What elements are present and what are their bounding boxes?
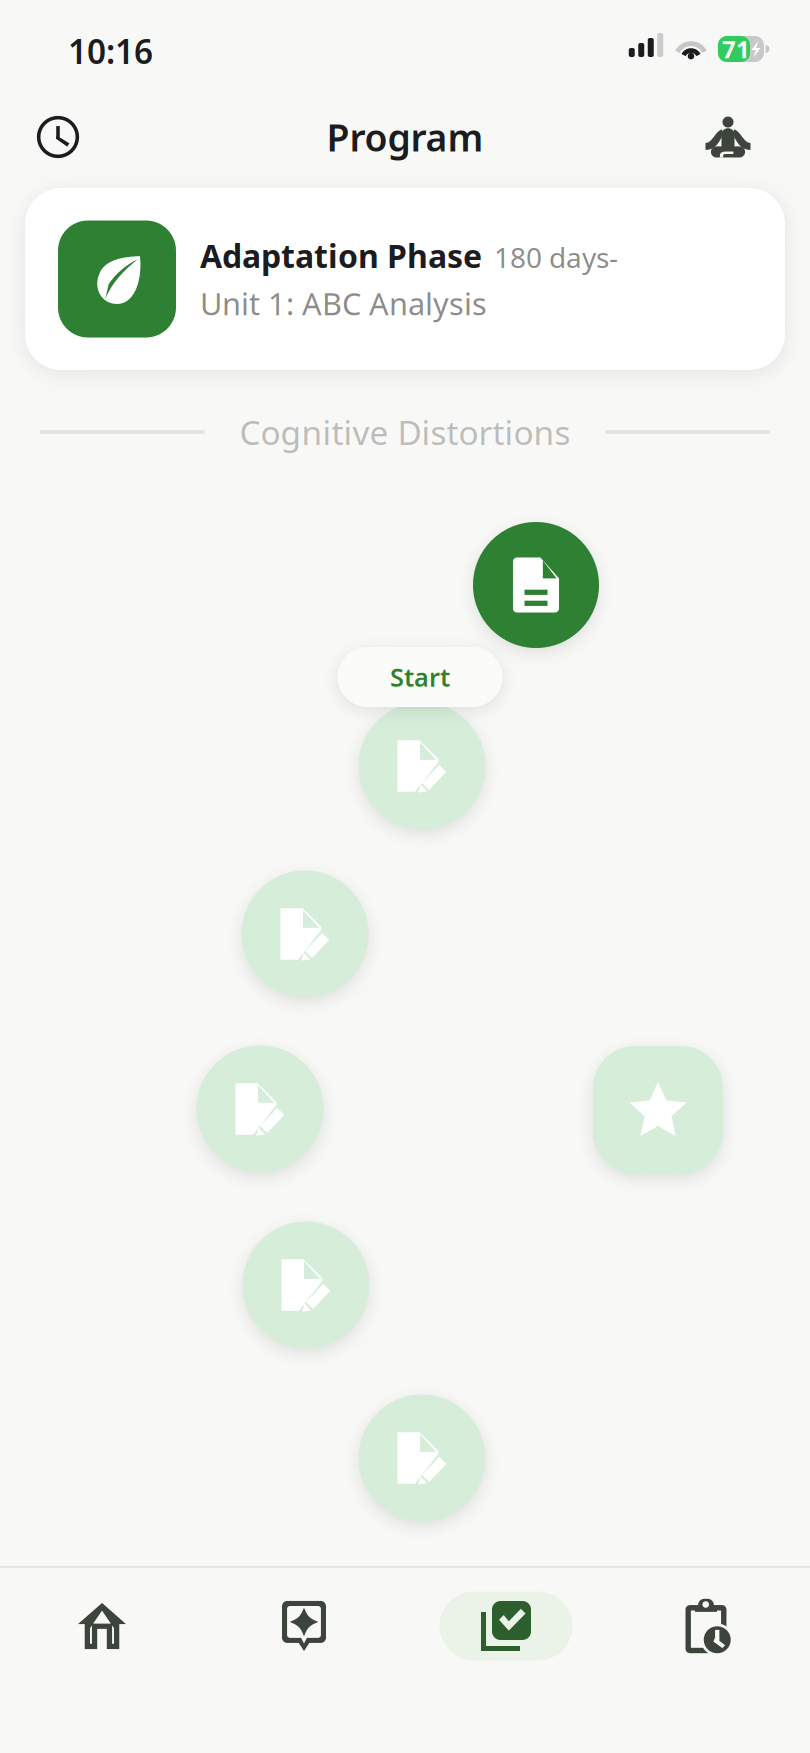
- button[interactable]: Locked lesson: [241, 870, 368, 997]
- button[interactable]: Start: [337, 647, 502, 707]
- staticText: 10:16: [68, 29, 153, 73]
- staticText: Start: [390, 660, 450, 694]
- staticText: Cognitive Distortions: [239, 410, 570, 454]
- button[interactable]: Adaptation Phase: [25, 188, 785, 370]
- button[interactable]: Home: [1, 1584, 203, 1668]
- button[interactable]: Locked lesson: [196, 1045, 323, 1172]
- staticText: Adaptation Phase: [200, 234, 482, 277]
- button[interactable]: History: [22, 101, 94, 173]
- button[interactable]: Locked lesson: [358, 702, 485, 829]
- button[interactable]: Program: [405, 1584, 607, 1668]
- staticText: 71: [722, 33, 750, 65]
- button[interactable]: Start lesson: [473, 522, 599, 648]
- button[interactable]: Locked lesson: [358, 1394, 485, 1521]
- staticText: Program: [326, 112, 483, 162]
- staticText: 180 days-: [494, 239, 618, 276]
- button[interactable]: Locked lesson: [242, 1221, 369, 1348]
- button[interactable]: Meditate: [692, 101, 764, 173]
- button[interactable]: Reward: [593, 1046, 723, 1174]
- button[interactable]: Assistant: [203, 1584, 405, 1668]
- staticText: Unit 1: ABC Analysis: [200, 283, 487, 324]
- button[interactable]: Journal: [607, 1584, 809, 1668]
